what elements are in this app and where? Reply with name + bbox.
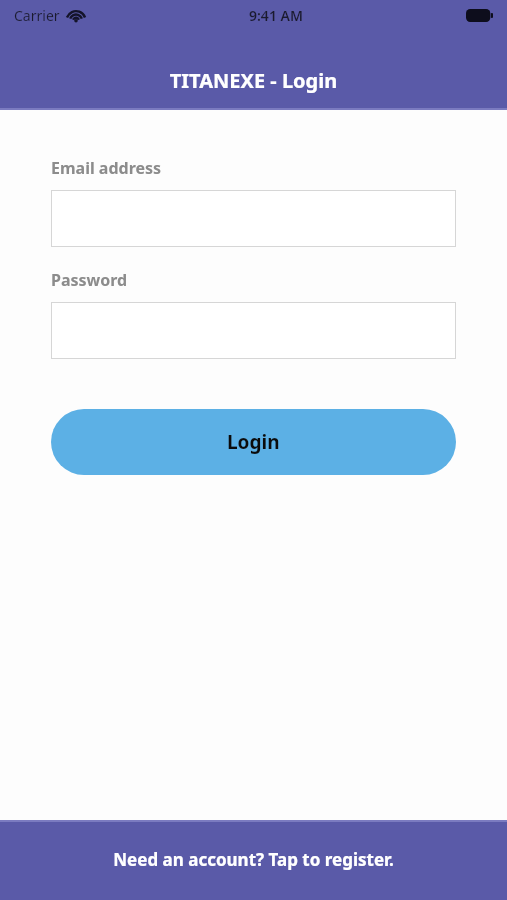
staticText: 9:41 AM	[249, 6, 303, 25]
button[interactable]: Need an account? Tap to register.	[0, 820, 507, 900]
staticText: Email address	[51, 157, 162, 179]
button[interactable]	[51, 302, 456, 359]
staticText: Password	[51, 269, 128, 291]
other: Battery full	[466, 9, 493, 22]
staticText: TITANEXE - Login	[0, 67, 507, 94]
staticText: Carrier	[14, 6, 60, 25]
staticText: Login	[227, 429, 280, 455]
other: Wi-Fi signal	[66, 7, 86, 23]
button[interactable]	[51, 190, 456, 247]
button[interactable]: Login	[51, 409, 456, 475]
staticText: Need an account? Tap to register.	[113, 848, 394, 871]
